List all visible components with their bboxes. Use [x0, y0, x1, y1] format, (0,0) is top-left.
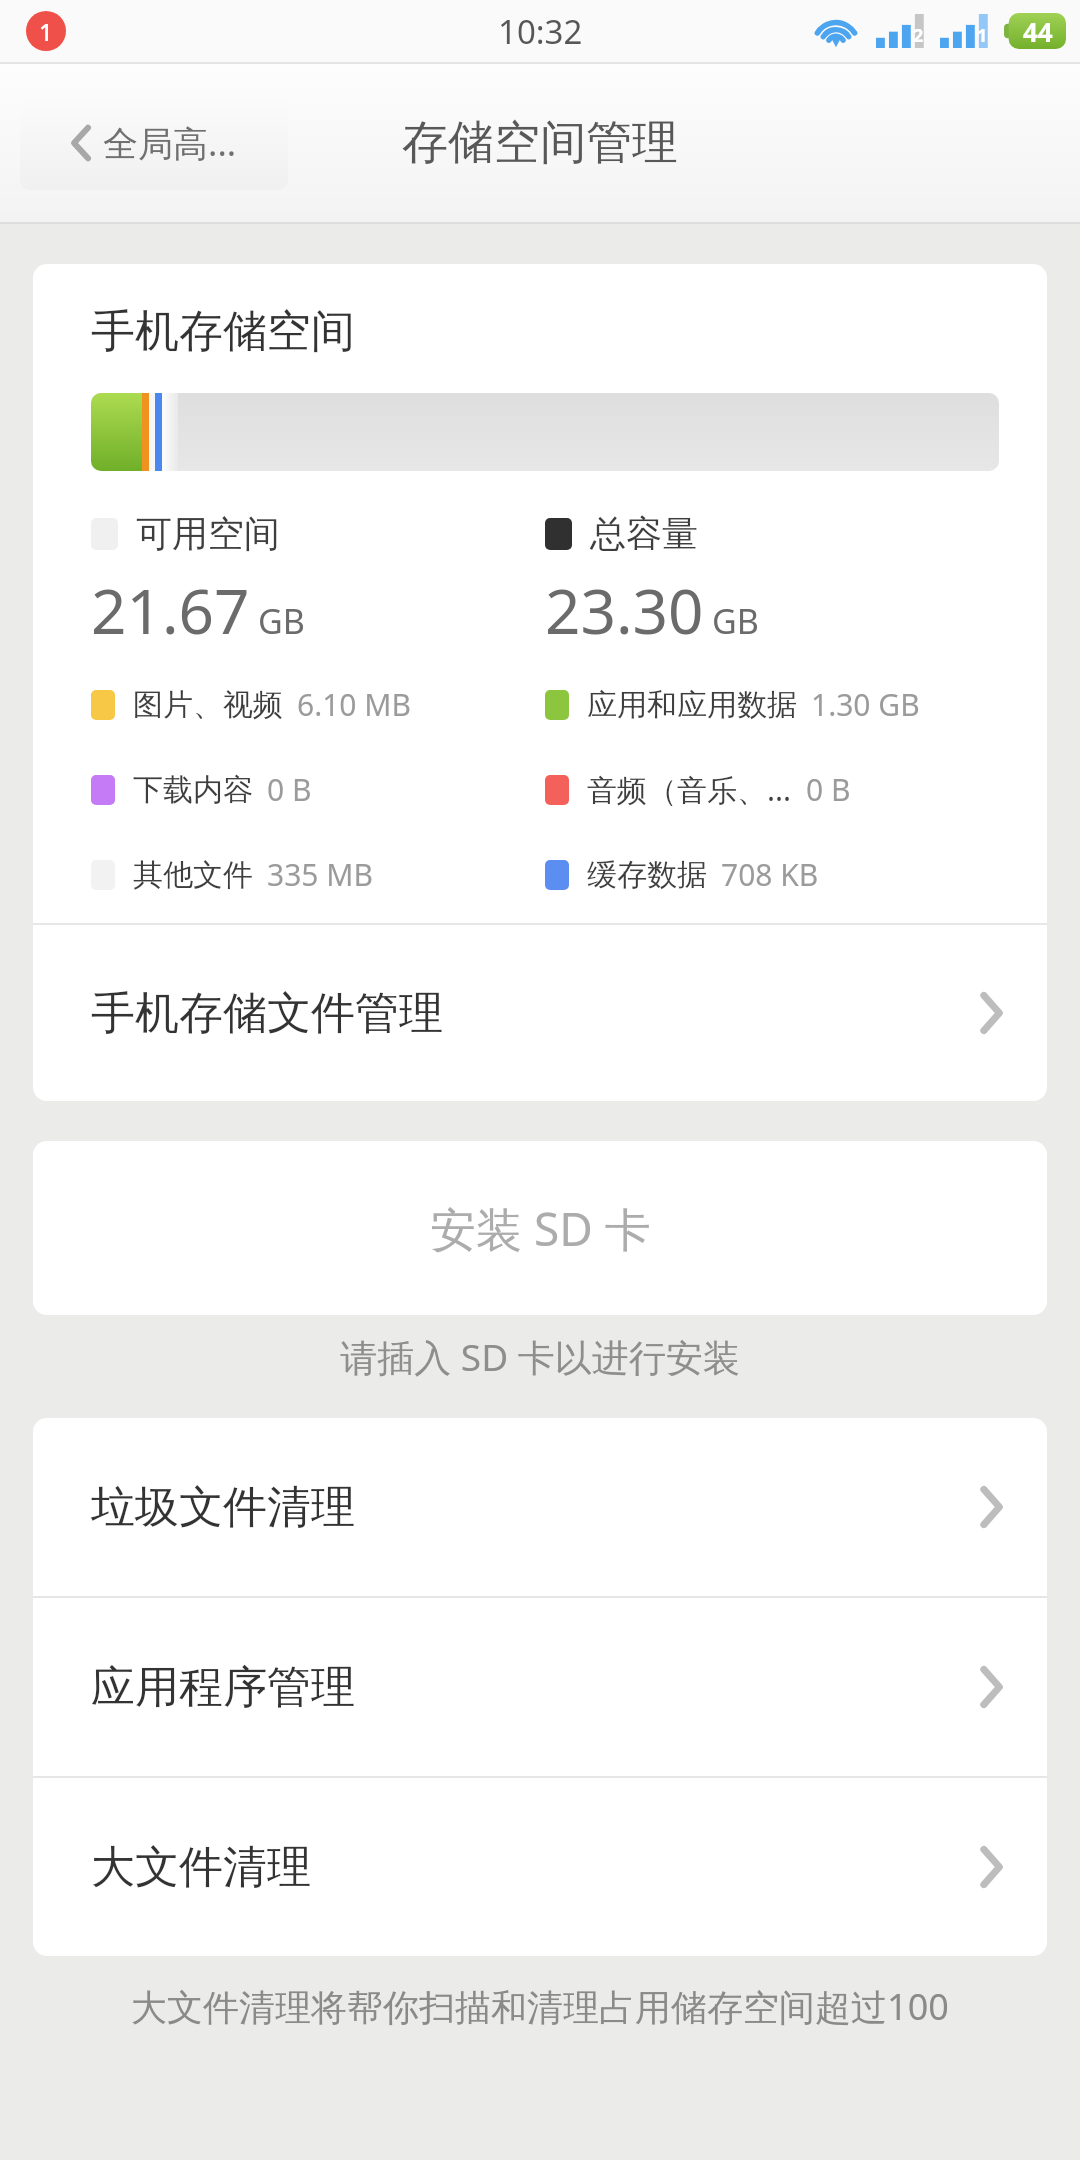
staticText: 大文件清理	[91, 1840, 979, 1895]
button[interactable]: 手机存储文件管理	[33, 925, 1047, 1101]
button[interactable]: 安装 SD 卡	[33, 1141, 1047, 1315]
button[interactable]: 应用程序管理	[33, 1598, 1047, 1776]
staticText: 1	[39, 15, 53, 48]
staticText: 2	[913, 23, 924, 48]
staticText: 44	[1023, 14, 1053, 49]
staticText: 6.10 MB	[297, 684, 412, 725]
staticText: GB	[258, 598, 305, 644]
staticText: 应用程序管理	[91, 1660, 979, 1715]
staticText: GB	[712, 598, 759, 644]
staticText: 垃圾文件清理	[91, 1480, 979, 1535]
staticText: 缓存数据	[587, 856, 707, 894]
staticText: 存储空间管理	[402, 114, 678, 172]
staticText: 其他文件	[133, 856, 253, 894]
staticText: 335 MB	[267, 854, 373, 895]
staticText: 下载内容	[133, 771, 253, 809]
button[interactable]: 全局高...	[20, 96, 288, 190]
other: Open 大文件清理	[979, 1846, 1003, 1888]
staticText: 10:32	[498, 9, 583, 54]
staticText: 应用和应用数据	[587, 686, 797, 724]
staticText: 图片、视频	[133, 686, 283, 724]
staticText: 23.30	[545, 568, 704, 652]
button[interactable]: 垃圾文件清理	[33, 1418, 1047, 1596]
staticText: 708 KB	[721, 854, 819, 895]
staticText: 总容量	[590, 511, 698, 556]
staticText: 1	[977, 23, 988, 48]
staticText: 手机存储空间	[91, 304, 355, 359]
staticText: 0 B	[806, 769, 851, 810]
staticText: 0 B	[267, 769, 312, 810]
other: Open 垃圾文件清理	[979, 1486, 1003, 1528]
staticText: 1.30 GB	[811, 684, 920, 725]
staticText: 全局高...	[103, 119, 237, 167]
staticText: 安装 SD 卡	[430, 1197, 651, 1260]
staticText: 请插入 SD 卡以进行安装	[0, 1331, 1080, 1382]
staticText: 21.67	[91, 568, 250, 652]
staticText: 音频（音乐、...	[587, 769, 792, 810]
staticText: 大文件清理将帮你扫描和清理占用储存空间超过100	[0, 1982, 1080, 2031]
other: Open 手机存储文件管理	[979, 992, 1003, 1034]
other: Open 应用程序管理	[979, 1666, 1003, 1708]
staticText: 手机存储文件管理	[91, 986, 979, 1041]
button[interactable]: 大文件清理	[33, 1778, 1047, 1956]
staticText: 可用空间	[136, 511, 280, 556]
